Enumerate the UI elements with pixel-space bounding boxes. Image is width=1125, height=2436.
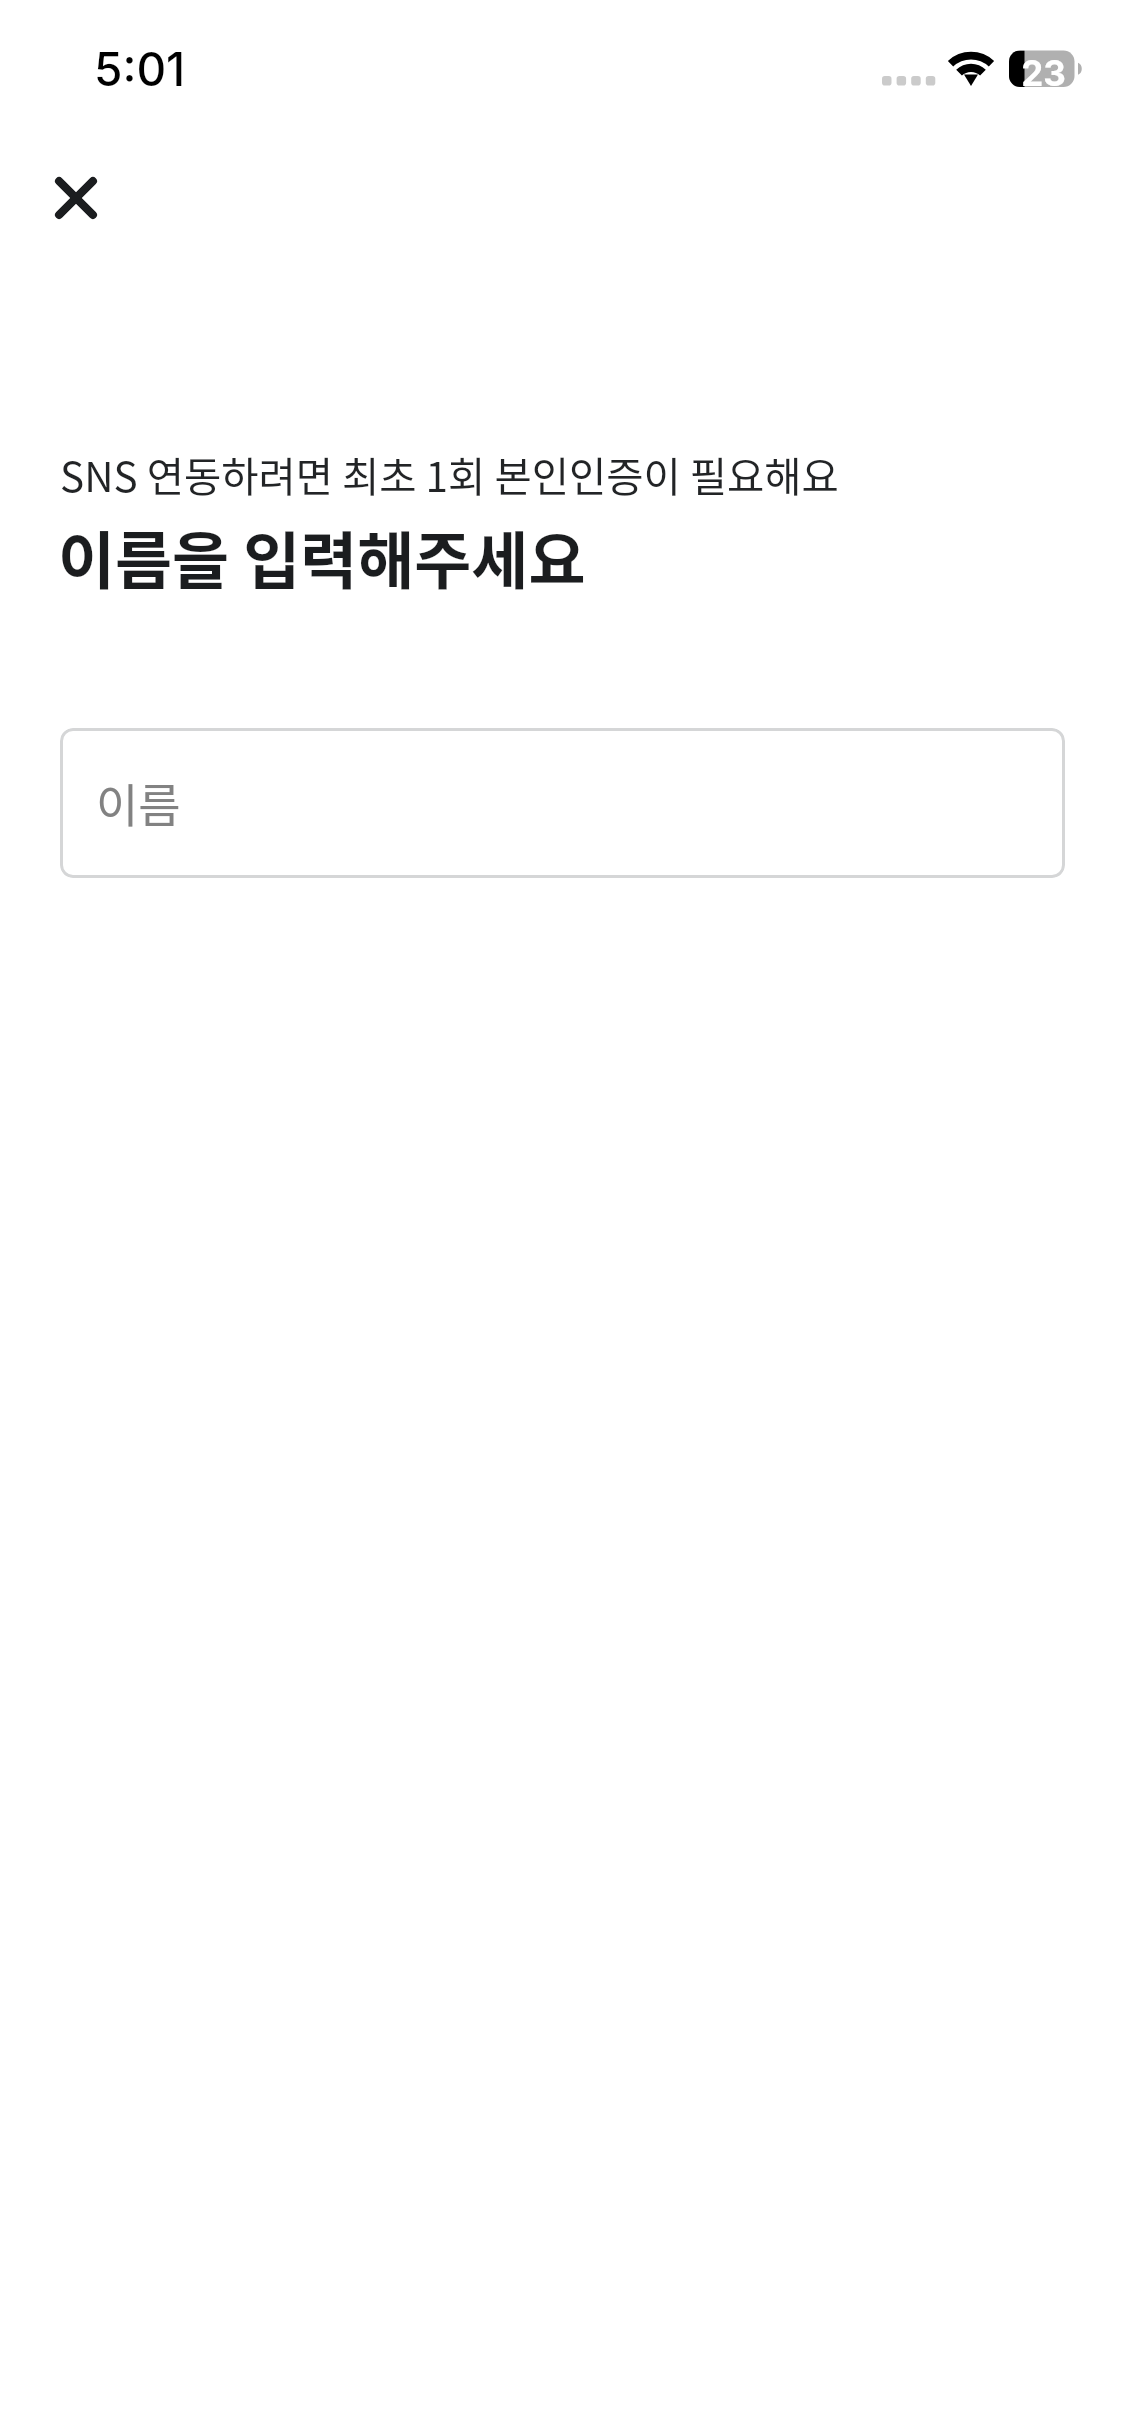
staticText: 이름을 입력해주세요 xyxy=(58,520,586,600)
staticText: 23 xyxy=(1021,52,1066,94)
staticText: 5:01 xyxy=(94,41,186,97)
staticText: 이름 xyxy=(96,772,181,834)
button[interactable]: 이름 입력 xyxy=(60,728,1065,878)
button[interactable]: Close xyxy=(27,149,125,247)
staticText: SNS 연동하려면 최초 1회 본인인증이 필요해요 xyxy=(60,447,839,503)
